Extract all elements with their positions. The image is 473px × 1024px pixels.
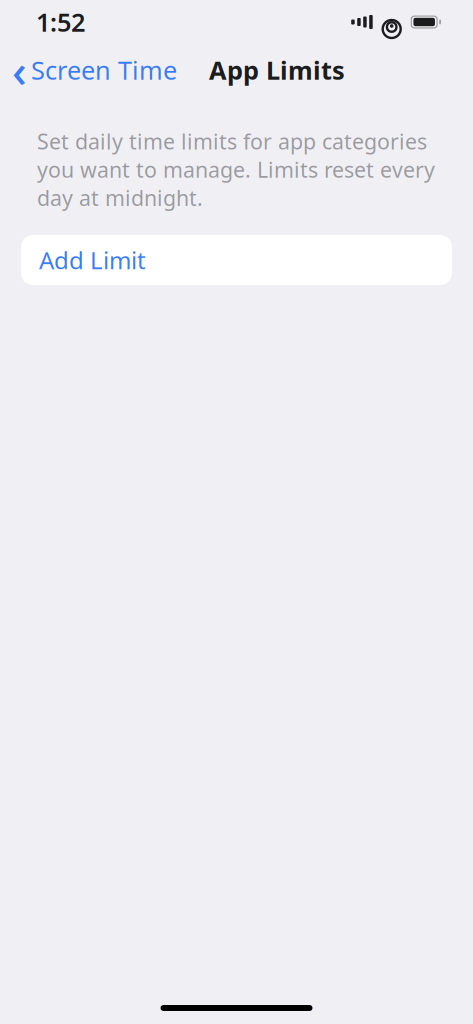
staticText: 1:52 [36,5,85,39]
staticText: Set daily time limits for app categories… [37,127,435,212]
staticText: App Limits [209,53,345,87]
button[interactable]: Add Limit [21,235,452,285]
staticText: Screen Time [31,53,177,87]
button[interactable]: ‹ [0,36,183,104]
staticText: Add Limit [39,244,146,276]
staticText: ‹ [12,40,27,100]
